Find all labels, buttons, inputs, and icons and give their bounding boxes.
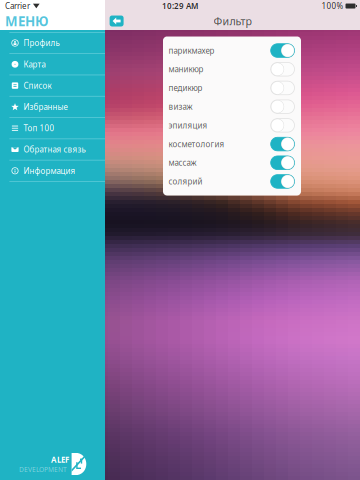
- staticText: солярий: [168, 176, 202, 187]
- staticText: Фильтр: [213, 14, 251, 28]
- staticText: Карта: [24, 59, 46, 70]
- button[interactable]: парикмахер: [163, 41, 301, 60]
- button[interactable]: солярий: [163, 172, 301, 191]
- staticText: косметология: [168, 139, 224, 149]
- staticText: Список: [24, 80, 52, 91]
- button[interactable]: педикюр: [163, 79, 301, 97]
- button[interactable]: Профиль: [0, 33, 105, 54]
- staticText: Обратная связь: [24, 144, 86, 155]
- button[interactable]: Информация: [0, 160, 105, 182]
- button[interactable]: маникюр: [163, 60, 301, 79]
- button[interactable]: визаж: [163, 97, 301, 116]
- staticText: ALEF: [51, 454, 69, 465]
- staticText: визаж: [168, 101, 192, 112]
- staticText: 100%: [321, 1, 343, 11]
- button[interactable]: Избранные: [0, 97, 105, 118]
- button[interactable]: косметология: [163, 135, 301, 153]
- staticText: массаж: [168, 157, 196, 168]
- button[interactable]: Топ 100: [0, 118, 105, 139]
- button[interactable]: эпиляция: [163, 116, 301, 135]
- staticText: Топ 100: [24, 123, 55, 133]
- staticText: маникюр: [168, 64, 203, 74]
- staticText: МЕНЮ: [5, 12, 49, 30]
- button[interactable]: Карта: [0, 54, 105, 75]
- staticText: эпиляция: [168, 120, 207, 131]
- staticText: парикмахер: [168, 45, 214, 56]
- button[interactable]: Обратная связь: [0, 139, 105, 160]
- staticText: педикюр: [168, 83, 202, 93]
- button[interactable]: Список: [0, 75, 105, 97]
- staticText: Избранные: [24, 102, 68, 112]
- staticText: Carrier: [5, 1, 30, 11]
- staticText: DEVELOPMENT: [19, 465, 67, 474]
- button[interactable]: массаж: [163, 153, 301, 172]
- staticText: 10:29 AM: [162, 1, 198, 11]
- staticText: Профиль: [24, 38, 60, 48]
- staticText: Информация: [24, 165, 76, 176]
- button[interactable]: Back: [110, 15, 124, 26]
